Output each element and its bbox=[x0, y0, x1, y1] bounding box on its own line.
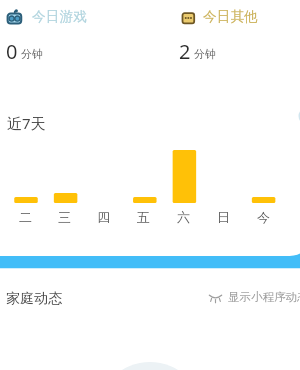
staticText: 显示小程序动态 bbox=[228, 290, 300, 304]
button[interactable]: 今日游戏 bbox=[0, 0, 150, 64]
staticText: 家庭动态 bbox=[6, 290, 62, 308]
staticText: 今日游戏 bbox=[32, 8, 87, 25]
staticText: 今 bbox=[257, 209, 270, 225]
staticText: 2 bbox=[179, 38, 191, 65]
staticText: 分钟 bbox=[21, 47, 43, 61]
staticText: 四 bbox=[97, 209, 110, 225]
staticText: 今日其他 bbox=[203, 8, 258, 25]
staticText: 二 bbox=[19, 209, 32, 225]
staticText: 五 bbox=[137, 209, 150, 225]
button[interactable]: 隐藏小程序动态 bbox=[209, 290, 300, 304]
staticText: 日 bbox=[217, 209, 230, 225]
staticText: 六 bbox=[177, 209, 190, 225]
staticText: 三 bbox=[58, 209, 71, 225]
other: 隐藏小程序动态 bbox=[209, 291, 222, 304]
button[interactable]: 今日其他 bbox=[150, 0, 300, 64]
staticText: 分钟 bbox=[194, 47, 216, 61]
staticText: 0 bbox=[6, 38, 18, 65]
staticText: 近7天 bbox=[7, 113, 46, 133]
